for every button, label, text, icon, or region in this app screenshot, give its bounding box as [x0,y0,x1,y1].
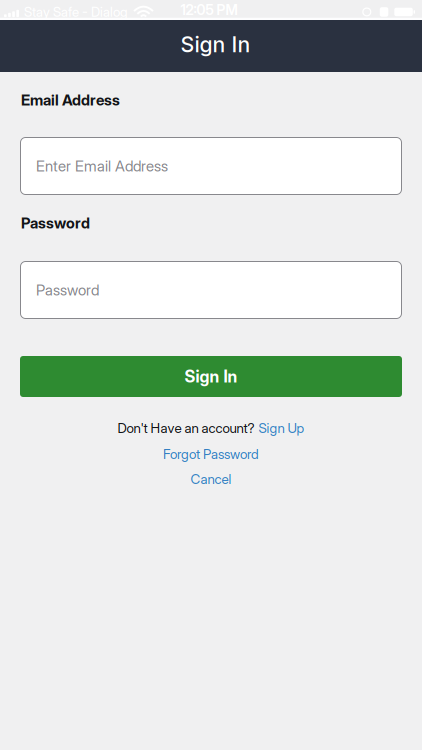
button[interactable]: Cancel [190,470,231,488]
button[interactable]: Forgot Password [163,445,259,463]
button[interactable]: Sign Up [258,420,304,436]
staticText: Password [36,281,99,299]
button[interactable]: Password [0,261,422,319]
staticText: Password [21,214,90,232]
staticText: Sign In [180,32,250,57]
staticText: Email Address [21,91,120,109]
button[interactable]: Sign In [20,356,402,397]
staticText: Sign In [184,366,237,387]
staticText: Enter Email Address [36,157,168,175]
staticText: Stay Safe - Dialog [24,4,128,20]
button[interactable]: Enter Email Address [0,137,422,195]
staticText: Don't Have an account? [117,420,254,436]
staticText: Cancel [190,471,231,487]
staticText: Sign Up [258,420,304,436]
staticText: Forgot Password [163,446,259,462]
staticText: 12:05 PM [180,1,237,18]
